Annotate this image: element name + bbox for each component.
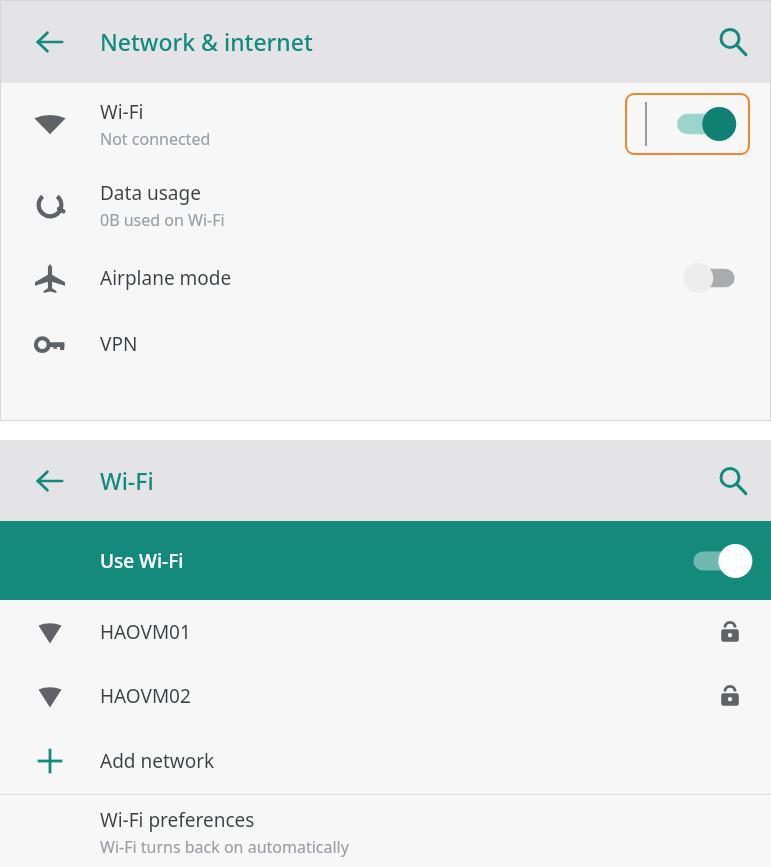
button[interactable]: Wi-Fi bbox=[0, 83, 771, 165]
staticText: VPN bbox=[100, 331, 138, 357]
button[interactable]: Wi-Fi toggle bbox=[625, 93, 750, 155]
button[interactable]: Back bbox=[0, 440, 100, 521]
button[interactable]: HAOVM02 bbox=[0, 664, 771, 728]
button[interactable]: Airplane mode toggle bbox=[682, 263, 738, 293]
staticText: Wi-Fi bbox=[100, 99, 144, 125]
staticText: Not connected bbox=[100, 128, 211, 150]
staticText: Wi-Fi preferences bbox=[100, 807, 255, 833]
staticText: Wi-Fi bbox=[100, 465, 695, 496]
staticText: Airplane mode bbox=[100, 265, 682, 291]
button[interactable]: Add network bbox=[0, 728, 771, 794]
button[interactable]: Data usage bbox=[0, 165, 771, 245]
button[interactable]: HAOVM01 bbox=[0, 600, 771, 664]
staticText: HAOVM02 bbox=[100, 683, 719, 709]
staticText: Use Wi-Fi bbox=[100, 548, 691, 574]
staticText: Wi-Fi turns back on automatically bbox=[100, 836, 349, 858]
staticText: Network & internet bbox=[100, 26, 695, 57]
button[interactable]: Search bbox=[695, 0, 771, 83]
staticText: 0B used on Wi-Fi bbox=[100, 209, 225, 231]
button[interactable]: Back bbox=[0, 0, 100, 83]
button[interactable]: Use Wi-Fi bbox=[0, 521, 771, 600]
button[interactable]: Wi-Fi preferences bbox=[0, 795, 771, 867]
staticText: Add network bbox=[100, 748, 215, 774]
button[interactable]: Airplane mode bbox=[0, 245, 771, 311]
staticText: Data usage bbox=[100, 180, 201, 206]
staticText: HAOVM01 bbox=[100, 619, 719, 645]
button[interactable]: VPN bbox=[0, 311, 771, 377]
button[interactable]: Search bbox=[695, 440, 771, 521]
